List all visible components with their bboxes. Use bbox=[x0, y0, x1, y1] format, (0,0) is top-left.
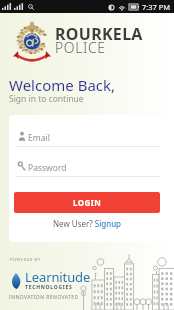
staticText: POLICE bbox=[55, 38, 106, 57]
button[interactable]: LOGIN bbox=[14, 192, 160, 213]
staticText: LOGIN bbox=[73, 197, 102, 208]
staticText: Email bbox=[28, 132, 50, 144]
staticText: 7:37 PM bbox=[142, 2, 171, 12]
staticText: TECHNOLOGIES bbox=[25, 284, 73, 291]
staticText: Sign in to continue bbox=[9, 93, 84, 105]
staticText: Password bbox=[28, 162, 67, 174]
button[interactable]: New User? Signup bbox=[53, 218, 122, 229]
staticText: New User? Signup bbox=[53, 218, 122, 229]
staticText: POWERED BY bbox=[10, 257, 41, 262]
staticText: Welcome Back, bbox=[9, 75, 116, 95]
staticText: ROURKELA bbox=[55, 23, 143, 45]
staticText: INNOVATION RENOVATED bbox=[9, 294, 79, 301]
staticText: Learnitude bbox=[25, 268, 91, 286]
